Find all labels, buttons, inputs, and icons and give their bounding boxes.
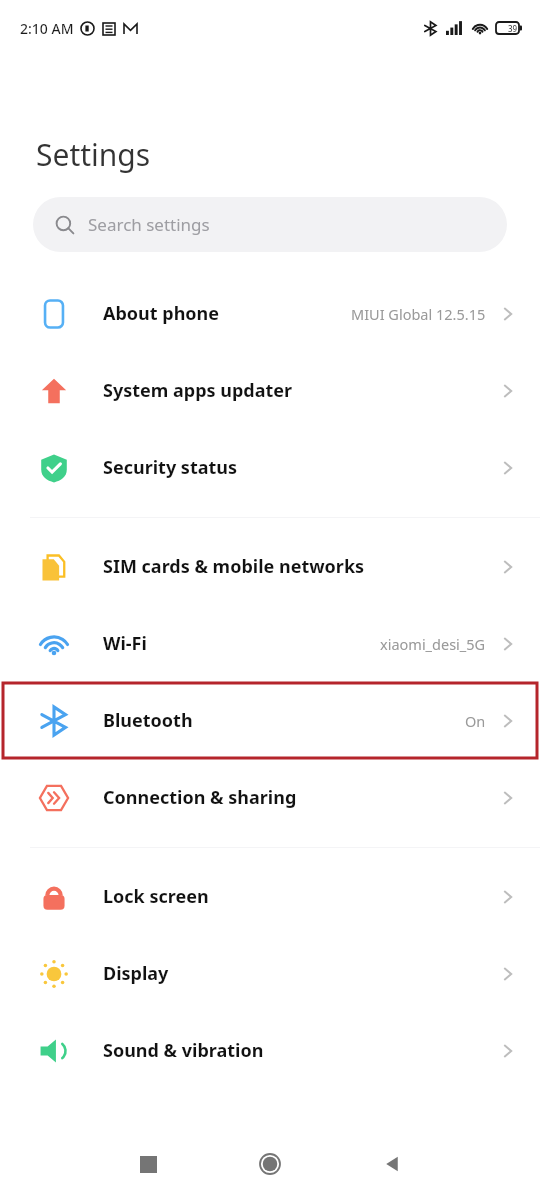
button[interactable]: SIM cards & mobile networks <box>0 528 540 605</box>
button[interactable]: Back <box>366 1138 418 1190</box>
staticText: About phone <box>103 301 220 326</box>
button[interactable]: Lock screen <box>0 858 540 935</box>
staticText: SIM cards & mobile networks <box>103 554 365 579</box>
staticText: MIUI Global 12.5.15 <box>351 304 486 324</box>
button[interactable]: About phone <box>0 275 540 352</box>
staticText: 2:10 AM <box>20 19 74 38</box>
button[interactable]: Bluetooth <box>0 682 540 759</box>
staticText: Lock screen <box>103 884 209 909</box>
button[interactable]: Search settings <box>33 197 507 252</box>
staticText: Search settings <box>88 213 210 236</box>
staticText: Sound & vibration <box>103 1038 264 1063</box>
button[interactable]: Connection & sharing <box>0 759 540 836</box>
staticText: On <box>465 711 486 731</box>
staticText: Display <box>103 961 169 986</box>
button[interactable]: Security status <box>0 429 540 506</box>
button[interactable]: Home <box>244 1138 296 1190</box>
staticText: Settings <box>36 134 151 175</box>
staticText: Bluetooth <box>103 708 193 733</box>
staticText: Wi-Fi <box>103 631 147 656</box>
button[interactable]: System apps updater <box>0 352 540 429</box>
staticText: Security status <box>103 455 238 480</box>
button[interactable]: Recents <box>122 1138 174 1190</box>
button[interactable]: Display <box>0 935 540 1012</box>
staticText: System apps updater <box>103 378 293 403</box>
staticText: Connection & sharing <box>103 785 297 810</box>
button[interactable]: Sound & vibration <box>0 1012 540 1089</box>
staticText: xiaomi_desi_5G <box>380 634 486 654</box>
staticText: 39 <box>508 23 518 34</box>
button[interactable]: Wi-Fi <box>0 605 540 682</box>
